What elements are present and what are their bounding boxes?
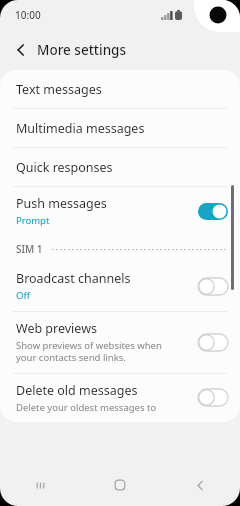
staticText: Multimedia messages: [16, 120, 145, 137]
staticText: Web previews: [16, 320, 97, 337]
staticText: More settings: [37, 41, 127, 59]
staticText: Delete your oldest messages to make room…: [16, 401, 176, 413]
staticText: SIM 1: [16, 242, 43, 256]
button[interactable]: Back: [160, 464, 240, 506]
staticText: Show previews of websites when your cont…: [16, 339, 164, 364]
button[interactable]: Recent apps: [0, 464, 80, 506]
staticText: Quick responses: [16, 159, 113, 176]
staticText: Text messages: [16, 81, 102, 98]
button[interactable]: Home: [80, 464, 160, 506]
button[interactable]: Quick responses: [0, 148, 240, 186]
button[interactable]: Push messages: [0, 187, 240, 236]
staticText: Delete old messages: [16, 382, 138, 399]
staticText: Broadcast channels: [16, 270, 131, 287]
button[interactable]: Toggle off: [198, 278, 228, 295]
staticText: Prompt: [16, 214, 50, 227]
staticText: 10:00: [15, 8, 41, 22]
button[interactable]: Web previews: [0, 312, 240, 373]
button[interactable]: Back: [8, 37, 34, 63]
button[interactable]: Delete old messages: [0, 374, 240, 422]
button[interactable]: Toggle off: [198, 389, 228, 406]
button[interactable]: Toggle off: [198, 334, 228, 351]
button[interactable]: Broadcast channels: [0, 262, 240, 311]
staticText: Push messages: [16, 195, 107, 212]
button[interactable]: Toggle on: [198, 203, 228, 220]
staticText: Off: [16, 289, 30, 302]
button[interactable]: Multimedia messages: [0, 109, 240, 147]
button[interactable]: Text messages: [0, 70, 240, 108]
